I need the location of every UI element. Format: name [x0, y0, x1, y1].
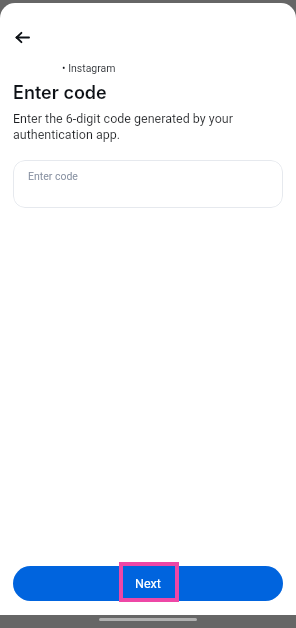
staticText: Next	[135, 576, 161, 591]
staticText: Enter code	[28, 170, 78, 182]
staticText: Enter the 6-digit code generated by your…	[13, 111, 233, 142]
button[interactable]: Enter code	[13, 160, 283, 208]
button[interactable]: Back	[12, 27, 32, 47]
button[interactable]: Next	[13, 566, 283, 601]
staticText: Enter code	[13, 82, 107, 104]
staticText: • Instagram	[62, 62, 116, 74]
